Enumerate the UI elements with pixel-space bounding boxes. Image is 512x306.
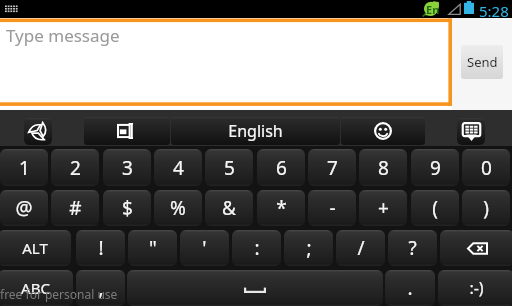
staticText: 4 [173,155,184,181]
staticText: ' [202,235,207,261]
button[interactable]: @ [0,190,48,226]
button[interactable]: Type message [0,18,452,110]
button[interactable]: - [308,190,356,226]
button[interactable]: 7 [308,149,356,186]
button[interactable]: Hide keyboard [457,118,485,145]
button[interactable]: 2 [51,149,99,186]
button[interactable]: English [171,117,340,145]
staticText: % [170,195,186,221]
button[interactable]: / [336,230,385,266]
staticText: & [222,195,236,221]
button[interactable]: Cursor control [84,117,170,145]
staticText: ; [306,235,312,261]
button[interactable]: + [359,190,407,226]
staticText: " [149,235,157,261]
staticText: 7 [327,155,338,181]
staticText: 8 [378,155,389,181]
staticText: :-) [469,277,484,299]
button[interactable]: ? [388,230,437,266]
staticText: Send [467,53,498,71]
button[interactable]: 8 [359,149,407,186]
button[interactable]: Space [127,270,383,306]
button[interactable]: " [128,230,177,266]
button[interactable]: 0 [462,149,510,186]
button[interactable]: & [205,190,253,226]
staticText: ? [408,235,417,261]
staticText: 5:28 [479,1,509,19]
staticText: 3 [122,155,133,181]
staticText: ( [432,195,438,221]
staticText: . [407,275,413,301]
staticText: , [98,275,104,301]
staticText: 2 [70,155,81,181]
staticText: ! [98,235,104,261]
staticText: ) [483,195,489,221]
button[interactable]: , [76,270,125,306]
button[interactable]: Backspace [440,230,512,266]
staticText: # [69,195,82,221]
button[interactable]: ALT [0,230,71,266]
staticText: $ [122,195,133,221]
staticText: 6 [276,155,287,181]
staticText: + [378,195,389,221]
staticText: 0 [481,155,492,181]
button[interactable]: $ [103,190,151,226]
staticText: / [357,235,365,261]
button[interactable]: Emoji [341,117,425,145]
button[interactable]: ' [180,230,229,266]
staticText: free for personal use [0,286,118,302]
staticText: * [276,195,287,221]
button[interactable]: 6 [257,149,305,186]
staticText: 1 [19,155,30,181]
button[interactable]: 9 [411,149,459,186]
button[interactable]: # [51,190,99,226]
button[interactable]: 5 [205,149,253,186]
button[interactable]: * [257,190,305,226]
button[interactable]: ( [411,190,459,226]
staticText: ABC [21,278,50,298]
button[interactable]: : [232,230,281,266]
button[interactable]: . [385,270,435,306]
button[interactable]: ; [284,230,333,266]
staticText: English [228,120,283,142]
button[interactable]: % [154,190,202,226]
button[interactable]: 3 [103,149,151,186]
button[interactable]: ABC [0,270,73,306]
button[interactable]: ! [76,230,125,266]
button[interactable]: 1 [0,149,48,186]
staticText: 9 [430,155,441,181]
staticText: : [254,235,260,261]
staticText: Type message [6,24,120,47]
staticText: ALT [22,238,48,258]
button[interactable]: :-) [438,270,512,306]
staticText: 5 [224,155,235,181]
staticText: - [329,195,336,221]
button[interactable]: Send [461,45,503,79]
button[interactable]: ) [462,190,510,226]
button[interactable]: Voice input [24,118,52,145]
staticText: @ [15,195,33,221]
staticText: En [426,2,440,17]
button[interactable]: 4 [154,149,202,186]
